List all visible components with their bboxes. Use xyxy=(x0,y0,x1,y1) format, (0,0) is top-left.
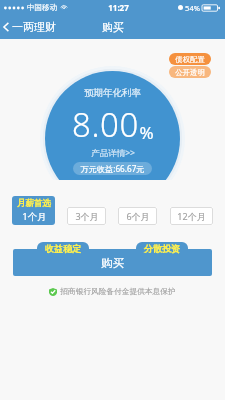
staticText: 中国移动 xyxy=(27,3,57,12)
button[interactable]: 一两理财 xyxy=(0,17,62,37)
staticText: 购买 xyxy=(102,20,124,34)
staticText: 收益稳定 xyxy=(45,243,81,254)
button[interactable]: 3个月 xyxy=(67,207,106,225)
staticText: 54% xyxy=(185,3,200,13)
button[interactable]: 12个月 xyxy=(170,207,213,225)
staticText: 购买 xyxy=(101,256,124,270)
staticText: 分散投资 xyxy=(144,243,180,254)
staticText: 8.00 xyxy=(72,102,139,147)
staticText: 公开透明 xyxy=(175,68,205,77)
staticText: 债权配置 xyxy=(175,55,205,64)
button[interactable]: 产品详情>> xyxy=(91,147,135,159)
button[interactable]: 债权配置 xyxy=(169,53,211,65)
staticText: 6个月 xyxy=(126,210,150,222)
staticText: 3个月 xyxy=(75,210,99,222)
staticText: 招商银行风险备付金提供本息保护 xyxy=(60,287,176,297)
staticText: 1个月 xyxy=(22,210,47,223)
button[interactable]: 购买 xyxy=(13,249,212,276)
staticText: 月薪首选 xyxy=(17,198,51,209)
staticText: 预期年化利率 xyxy=(84,87,141,99)
button[interactable]: 月薪首选 xyxy=(12,196,55,225)
button[interactable]: 公开透明 xyxy=(169,66,211,78)
staticText: % xyxy=(139,121,154,144)
staticText: 万元收益:66.67元 xyxy=(80,163,145,174)
staticText: 12个月 xyxy=(177,210,206,222)
button[interactable]: 6个月 xyxy=(118,207,157,225)
staticText: 一两理财 xyxy=(12,20,56,34)
staticText: 11:27 xyxy=(108,2,129,13)
